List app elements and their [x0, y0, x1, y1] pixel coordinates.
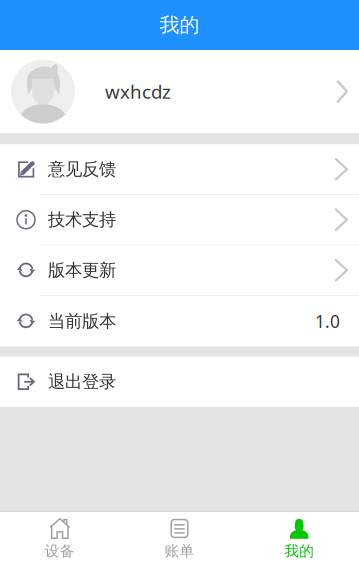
staticText: 版本更新: [48, 260, 116, 281]
staticText: 我的: [284, 542, 314, 560]
staticText: wxhcdz: [105, 79, 171, 104]
button[interactable]: 当前版本: [0, 296, 359, 346]
button[interactable]: 意见反馈: [0, 144, 359, 195]
button[interactable]: 账单: [120, 512, 239, 566]
staticText: 技术支持: [48, 209, 116, 230]
staticText: 我的: [159, 13, 199, 37]
staticText: 意见反馈: [48, 159, 116, 180]
button[interactable]: 版本更新: [0, 245, 359, 296]
button[interactable]: 技术支持: [0, 195, 359, 245]
staticText: 1.0: [315, 310, 340, 333]
staticText: 退出登录: [48, 371, 116, 392]
staticText: 账单: [164, 542, 194, 560]
button[interactable]: 我的: [239, 512, 359, 566]
staticText: 当前版本: [48, 311, 116, 332]
button[interactable]: wxhcdz: [0, 50, 359, 133]
staticText: 设备: [45, 542, 75, 560]
button[interactable]: 退出登录: [0, 356, 359, 407]
button[interactable]: 设备: [0, 512, 120, 566]
